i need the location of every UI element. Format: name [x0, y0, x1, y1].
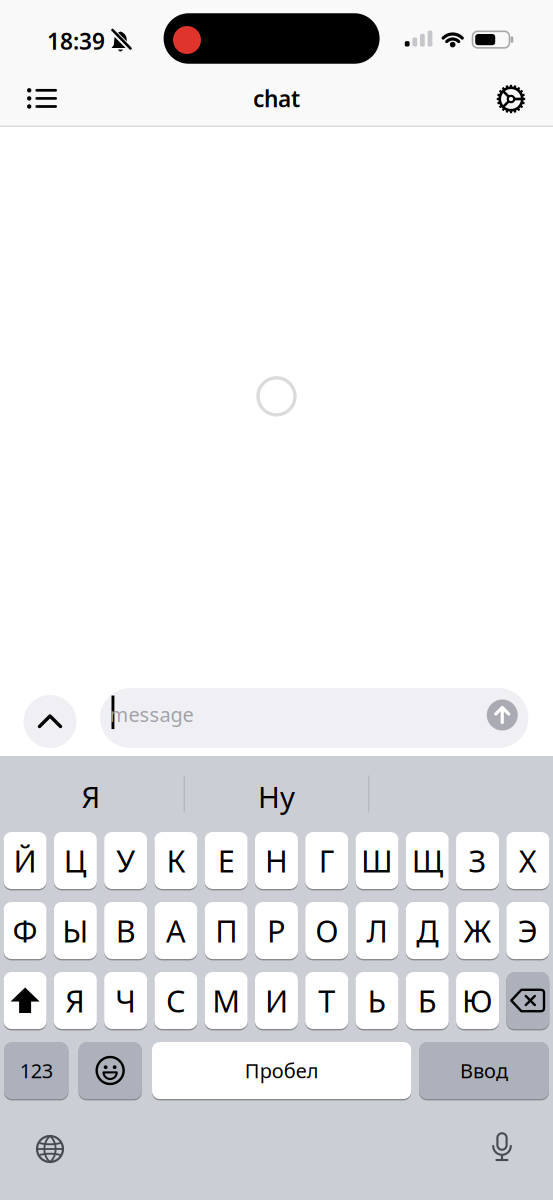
button[interactable]: [78, 1041, 142, 1100]
button[interactable]: Ь: [355, 971, 398, 1030]
button[interactable]: С: [154, 971, 197, 1030]
button[interactable]: О: [305, 901, 348, 960]
button[interactable]: А: [154, 901, 197, 960]
staticText: П: [215, 910, 237, 951]
staticText: У: [116, 840, 135, 881]
button[interactable]: Ю: [456, 971, 499, 1030]
button[interactable]: [506, 971, 549, 1030]
button[interactable]: Я: [54, 971, 97, 1030]
staticText: 123: [20, 1057, 53, 1084]
button[interactable]: Ж: [456, 901, 499, 960]
button[interactable]: Й: [4, 831, 47, 890]
button[interactable]: [23, 84, 59, 112]
staticText: Э: [518, 910, 538, 951]
button[interactable]: Е: [205, 831, 248, 890]
button[interactable]: Р: [255, 901, 298, 960]
staticText: М: [212, 980, 240, 1021]
staticText: Л: [366, 910, 387, 951]
staticText: chat: [253, 83, 300, 113]
button[interactable]: Г: [305, 831, 348, 890]
button[interactable]: [491, 1131, 513, 1163]
button[interactable]: Ввод: [419, 1041, 549, 1100]
button[interactable]: И: [255, 971, 298, 1030]
staticText: Ц: [64, 840, 87, 881]
staticText: Ч: [115, 980, 136, 1021]
button[interactable]: Ш: [355, 831, 398, 890]
button[interactable]: Щ: [406, 831, 449, 890]
button[interactable]: Ц: [54, 831, 97, 890]
staticText: 18:39: [47, 26, 105, 56]
button[interactable]: Б: [406, 971, 449, 1030]
staticText: Щ: [412, 840, 443, 881]
button[interactable]: Л: [355, 901, 398, 960]
button[interactable]: Пробел: [152, 1041, 411, 1100]
button[interactable]: В: [104, 901, 147, 960]
staticText: А: [166, 910, 186, 951]
button[interactable]: Т: [305, 971, 348, 1030]
button[interactable]: Ы: [54, 901, 97, 960]
button[interactable]: [493, 81, 529, 117]
staticText: Ю: [462, 980, 493, 1021]
button[interactable]: message: [100, 688, 528, 748]
staticText: Ну: [258, 777, 295, 816]
staticText: Ф: [13, 910, 38, 951]
button[interactable]: К: [154, 831, 197, 890]
button[interactable]: Д: [406, 901, 449, 960]
staticText: Ь: [367, 980, 386, 1021]
staticText: Ш: [361, 840, 393, 881]
staticText: И: [265, 980, 288, 1021]
staticText: Ж: [463, 910, 491, 951]
staticText: О: [315, 910, 338, 951]
button[interactable]: П: [205, 901, 248, 960]
button[interactable]: [23, 695, 76, 748]
staticText: Я: [81, 777, 100, 816]
staticText: Ы: [62, 910, 88, 951]
button[interactable]: [35, 1134, 65, 1164]
staticText: message: [109, 701, 193, 728]
staticText: К: [166, 840, 185, 881]
staticText: Е: [218, 840, 235, 881]
staticText: Б: [418, 980, 437, 1021]
button[interactable]: Я: [1, 771, 181, 821]
staticText: Р: [267, 910, 286, 951]
button[interactable]: М: [205, 971, 248, 1030]
button[interactable]: [4, 971, 47, 1030]
button[interactable]: Ну: [186, 771, 366, 821]
staticText: З: [468, 840, 486, 881]
staticText: Д: [416, 910, 438, 951]
button[interactable]: [487, 699, 518, 730]
staticText: Т: [318, 980, 335, 1021]
staticText: С: [166, 980, 186, 1021]
button[interactable]: Э: [506, 901, 549, 960]
staticText: Х: [519, 840, 537, 881]
staticText: Я: [65, 980, 85, 1021]
button[interactable]: Ф: [4, 901, 47, 960]
staticText: Н: [265, 840, 288, 881]
staticText: Пробел: [245, 1057, 319, 1084]
button[interactable]: 123: [4, 1041, 68, 1100]
staticText: Ввод: [460, 1057, 508, 1084]
button[interactable]: Х: [506, 831, 549, 890]
staticText: В: [116, 910, 136, 951]
button[interactable]: З: [456, 831, 499, 890]
button[interactable]: У: [104, 831, 147, 890]
staticText: Г: [319, 840, 335, 881]
staticText: Й: [14, 840, 37, 881]
button[interactable]: Ч: [104, 971, 147, 1030]
button[interactable]: Н: [255, 831, 298, 890]
